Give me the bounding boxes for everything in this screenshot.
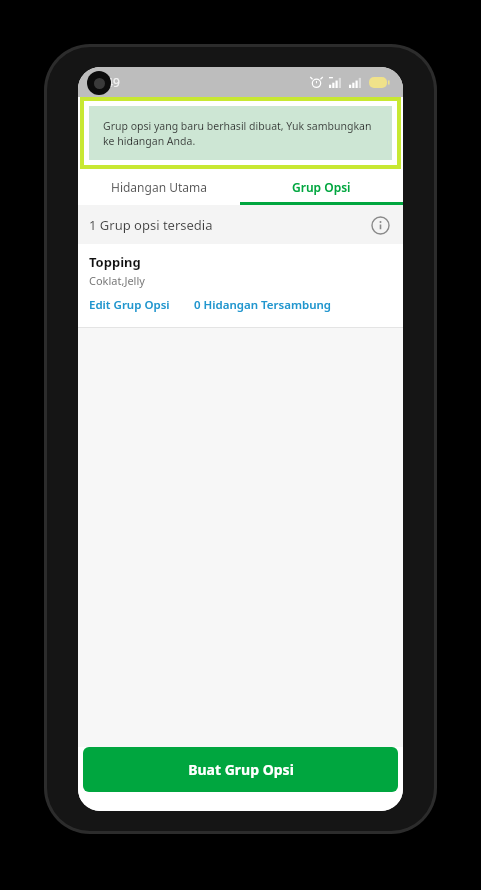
staticText: 0 Hidangan Tersambung bbox=[194, 297, 331, 313]
staticText: 1 Grup opsi tersedia bbox=[89, 216, 213, 234]
button[interactable]: 0 Hidangan Tersambung bbox=[194, 297, 331, 313]
button[interactable]: Hidangan Utama bbox=[78, 169, 240, 205]
button[interactable]: Edit Grup Opsi bbox=[89, 297, 170, 313]
staticText: 0:49 bbox=[96, 74, 120, 90]
button[interactable]: Topping bbox=[78, 244, 403, 327]
staticText: Edit Grup Opsi bbox=[89, 297, 170, 313]
button[interactable]: Buat Grup Opsi bbox=[83, 747, 398, 792]
staticText: Topping bbox=[89, 253, 141, 271]
button[interactable]: Informasi bbox=[367, 212, 393, 238]
staticText: Buat Grup Opsi bbox=[188, 760, 294, 779]
staticText: Grup Opsi bbox=[292, 179, 351, 195]
staticText: Grup opsi yang baru berhasil dibuat, Yuk… bbox=[103, 119, 374, 148]
staticText: Coklat,Jelly bbox=[89, 273, 145, 288]
button[interactable]: Grup Opsi bbox=[240, 169, 403, 205]
staticText: Hidangan Utama bbox=[111, 179, 207, 195]
